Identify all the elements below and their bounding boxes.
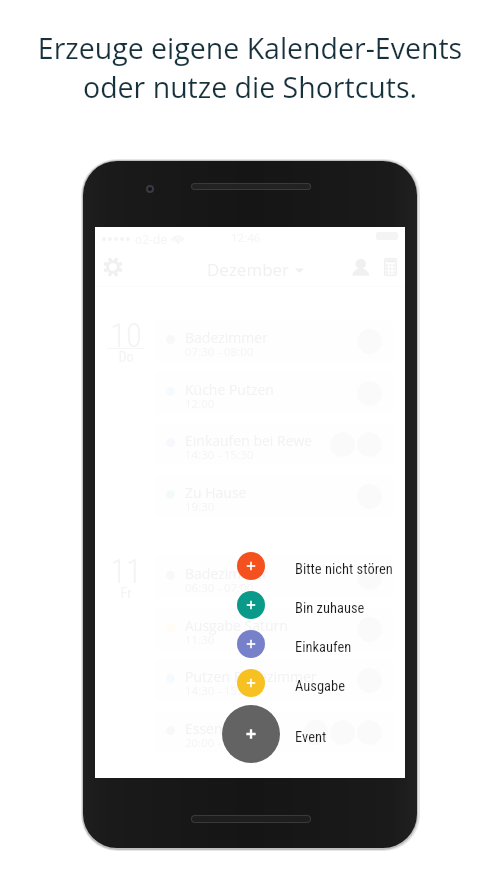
button[interactable]: Event — [295, 729, 327, 746]
button[interactable]: Account — [348, 244, 372, 290]
button[interactable]: Bin zuhause — [237, 591, 265, 619]
staticText: Erzeuge eigene Kalender-Events oder nutz… — [0, 29, 500, 106]
button[interactable]: Calculator — [380, 244, 400, 290]
button[interactable]: Ausgabe — [237, 669, 265, 697]
staticText: 12:46 — [231, 230, 261, 246]
staticText: Essen — [185, 719, 223, 738]
staticText: Ausgabe — [295, 678, 345, 695]
button[interactable]: Ausgabe — [295, 678, 345, 695]
button[interactable]: Bin zuhause — [295, 600, 365, 617]
staticText: 14:30 - 15:30 — [185, 683, 254, 699]
staticText: Küche Putzen — [185, 380, 274, 399]
staticText: 06:30 - 07:00 — [185, 580, 254, 596]
staticText: Einkaufen bei Rewe — [185, 431, 313, 450]
button[interactable]: Badezimmer — [155, 556, 393, 598]
staticText: 10 — [102, 317, 150, 355]
staticText: Zu Hause — [185, 483, 247, 502]
staticText: Badezimmer — [185, 328, 268, 347]
staticText: Ausgabe Saturn — [185, 616, 288, 635]
staticText: Badezimmer — [185, 564, 268, 583]
button[interactable]: Essen — [155, 711, 393, 753]
button[interactable]: Bitte nicht stören — [295, 561, 393, 578]
staticText: o2-de — [135, 231, 168, 247]
staticText: 20:00 - 21:00 — [185, 735, 254, 751]
staticText: Event — [295, 729, 327, 746]
button[interactable]: Bitte nicht stören — [237, 552, 265, 580]
staticText: Dezember — [207, 258, 290, 281]
button[interactable]: Settings — [102, 244, 124, 290]
button[interactable]: Putzen Badezimmer — [155, 659, 393, 701]
button[interactable]: Einkaufen — [295, 639, 352, 656]
staticText: Putzen Badezimmer — [185, 667, 317, 686]
staticText: Bin zuhause — [295, 600, 365, 617]
button[interactable]: Einkaufen — [237, 630, 265, 658]
button[interactable]: Ausgabe Saturn — [155, 608, 393, 650]
staticText: Einkaufen — [295, 639, 352, 656]
staticText: Bitte nicht stören — [295, 561, 393, 578]
button[interactable]: Add event — [222, 705, 280, 763]
